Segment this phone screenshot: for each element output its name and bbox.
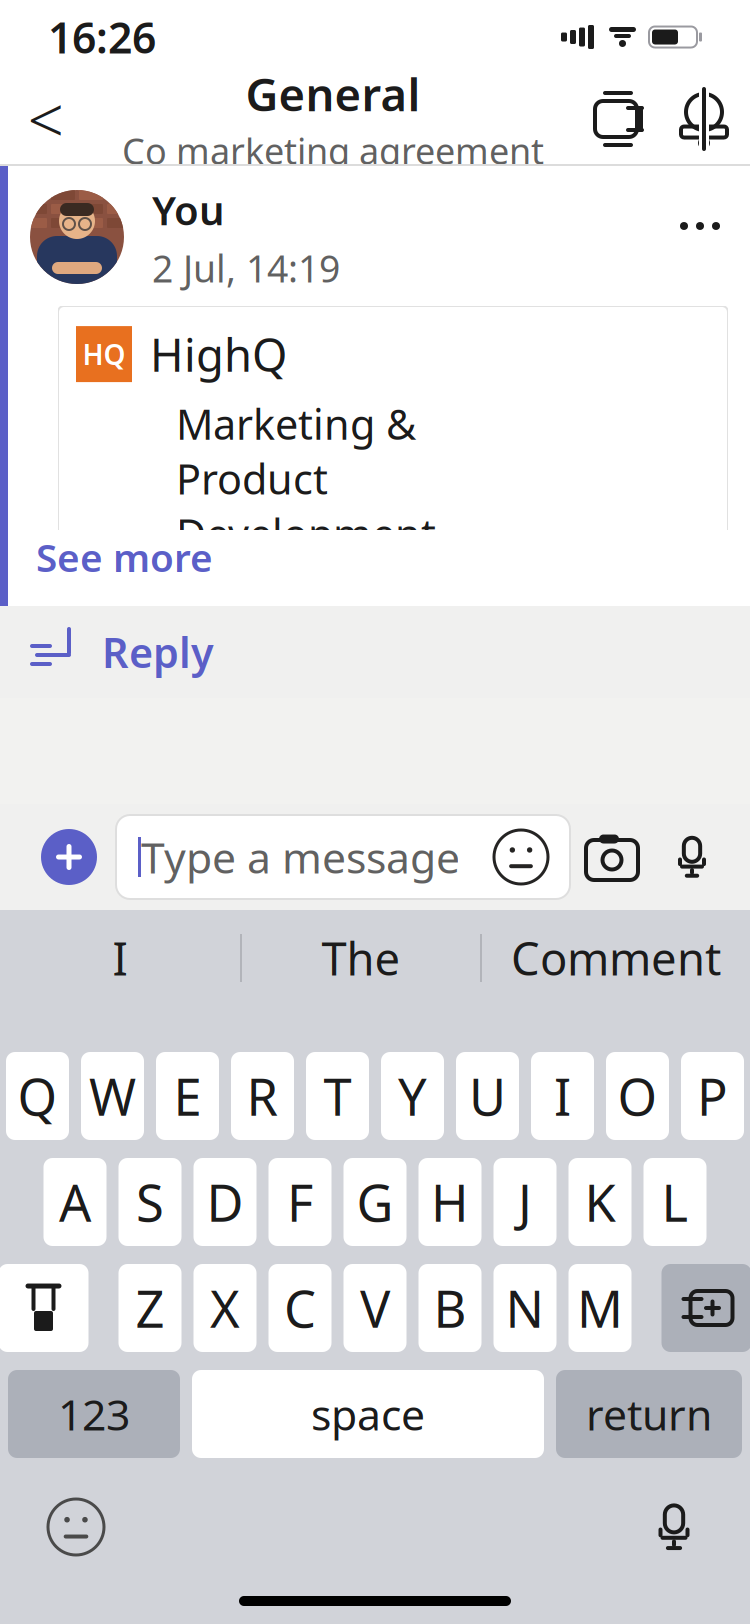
staticText: Comment [511, 928, 721, 988]
button[interactable]: U [456, 1052, 519, 1140]
button[interactable]: I [0, 910, 240, 1006]
staticText: H [431, 1168, 469, 1236]
staticText: Z [135, 1274, 164, 1342]
staticText: Co marketing agreement [122, 127, 544, 174]
button[interactable]: B [418, 1264, 481, 1352]
staticText: View [84, 886, 174, 941]
button[interactable]: I [531, 1052, 594, 1140]
staticText: O [617, 1062, 657, 1130]
staticText: U [469, 1062, 506, 1130]
button[interactable]: See more [8, 530, 750, 584]
staticText: A [59, 1168, 91, 1236]
staticText: X [210, 1274, 240, 1342]
staticText: N [505, 1274, 544, 1342]
button[interactable]: Video call [580, 75, 664, 163]
staticText: K [584, 1168, 615, 1236]
button[interactable]: space [192, 1370, 544, 1458]
staticText: HighQ [150, 324, 287, 384]
button[interactable]: return [556, 1370, 742, 1458]
button[interactable]: Camera [570, 818, 654, 896]
staticText: space [311, 1386, 425, 1442]
staticText: J [518, 1168, 532, 1236]
button[interactable]: More options [660, 194, 740, 258]
staticText: G [356, 1168, 393, 1236]
button[interactable]: Y [381, 1052, 444, 1140]
staticText: The [321, 928, 400, 988]
staticText: < [27, 76, 64, 161]
staticText: P [697, 1062, 728, 1130]
button[interactable]: E [156, 1052, 219, 1140]
staticText: Y [398, 1062, 427, 1130]
button[interactable]: G [343, 1158, 406, 1246]
button[interactable]: Add attachment [30, 818, 108, 896]
staticText: Type a message [141, 829, 460, 885]
button[interactable]: C [268, 1264, 331, 1352]
button[interactable]: Type a message [116, 815, 570, 899]
button[interactable]: R [231, 1052, 294, 1140]
staticText: 16:26 [48, 9, 156, 65]
staticText: 123 [58, 1386, 130, 1442]
button[interactable]: Z [118, 1264, 181, 1352]
button[interactable]: Shift [0, 1264, 88, 1352]
button[interactable]: X [193, 1264, 256, 1352]
button[interactable]: D [193, 1158, 256, 1246]
staticText: You [152, 183, 225, 236]
button[interactable]: O [606, 1052, 669, 1140]
button[interactable]: V [343, 1264, 406, 1352]
staticText: S [136, 1168, 164, 1236]
staticText: Reply [102, 625, 214, 679]
staticText: I [112, 928, 127, 988]
staticText: R [246, 1062, 278, 1130]
staticText: V [360, 1274, 390, 1342]
button[interactable]: H [418, 1158, 481, 1246]
button[interactable]: Reply [0, 606, 750, 698]
button[interactable]: 123 [8, 1370, 180, 1458]
staticText: Agreement V3.4.docx [176, 570, 392, 680]
button[interactable]: The [242, 910, 480, 1006]
button[interactable]: Emoji keyboard [24, 1481, 128, 1573]
staticText: return [586, 1386, 712, 1442]
button[interactable]: K [568, 1158, 631, 1246]
staticText: https://uat.highq.in/bey7cq6wf [176, 701, 427, 865]
button[interactable]: Back [6, 75, 86, 163]
staticText: 2 Jul, 14:19 [152, 243, 340, 293]
button[interactable]: L [643, 1158, 706, 1246]
button[interactable]: Voice message [654, 818, 730, 896]
button[interactable]: J [493, 1158, 556, 1246]
staticText: E [173, 1062, 201, 1130]
button[interactable]: View [76, 881, 182, 945]
staticText: C [284, 1274, 316, 1342]
staticText: W [89, 1062, 136, 1130]
button[interactable]: T [306, 1052, 369, 1140]
button[interactable]: W [81, 1052, 144, 1140]
button[interactable]: A [43, 1158, 106, 1246]
staticText: HQ [82, 335, 125, 373]
button[interactable]: Q [6, 1052, 69, 1140]
button[interactable]: P [681, 1052, 744, 1140]
button[interactable]: S [118, 1158, 181, 1246]
button[interactable]: F [268, 1158, 331, 1246]
button[interactable]: Mute notifications [664, 75, 744, 163]
staticText: See more [36, 531, 213, 583]
button[interactable]: N [493, 1264, 556, 1352]
staticText: L [661, 1168, 688, 1236]
staticText: B [433, 1274, 466, 1342]
staticText: General [245, 63, 420, 124]
staticText: F [287, 1168, 313, 1236]
button[interactable]: Comment [482, 910, 750, 1006]
button[interactable]: Delete [661, 1264, 750, 1352]
staticText: T [323, 1062, 351, 1130]
staticText: W [82, 605, 122, 660]
staticText: I [554, 1062, 571, 1130]
button[interactable]: M [568, 1264, 631, 1352]
staticText: D [206, 1168, 243, 1236]
staticText: M [577, 1274, 623, 1342]
button[interactable]: Dictation [622, 1481, 726, 1573]
staticText: Q [17, 1062, 57, 1130]
staticText: Marketing & Product Development [176, 396, 436, 561]
